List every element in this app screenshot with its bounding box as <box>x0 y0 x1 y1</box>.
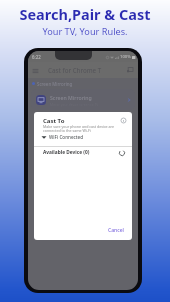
staticText: Cast for Chrome T <box>48 66 102 74</box>
staticText: Cancel <box>108 227 124 234</box>
button[interactable]: Cast <box>124 64 136 76</box>
staticText: 6:22 <box>32 54 41 60</box>
staticText: 100% <box>120 54 131 60</box>
staticText: WiFi Connected <box>49 134 84 140</box>
button[interactable]: Menu <box>30 65 41 76</box>
button[interactable]: Refresh <box>116 147 127 158</box>
staticText: Available Device (0) <box>43 149 90 156</box>
staticText: Search,Pair & Cast <box>19 4 151 24</box>
button[interactable]: Screen Mirroring <box>31 89 135 110</box>
staticText: Cast To <box>43 117 65 125</box>
staticText: Make sure your phone and cast device are… <box>43 124 125 133</box>
button[interactable]: Cancel <box>105 224 127 237</box>
staticText: Screen Mirroring <box>37 81 73 87</box>
staticText: Screen Mirroring <box>50 94 92 101</box>
button[interactable]: Info <box>118 115 128 125</box>
staticText: Your TV, Your Rules. <box>42 25 128 38</box>
